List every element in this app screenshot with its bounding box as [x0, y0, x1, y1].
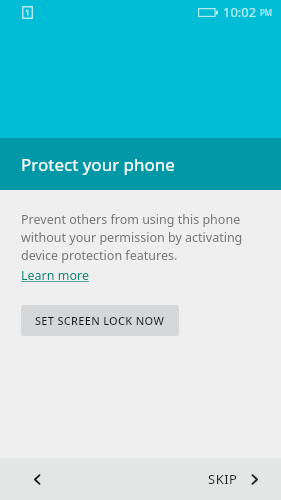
staticText: Prevent others from using this phone wit… — [21, 211, 265, 264]
staticText: 10:02 — [223, 3, 257, 21]
staticText: SET SCREEN LOCK NOW — [35, 313, 165, 328]
button[interactable]: SKIP — [202, 464, 267, 494]
button[interactable]: Learn more — [21, 267, 89, 284]
staticText: PM — [260, 7, 273, 18]
staticText: Protect your phone — [21, 153, 175, 176]
button[interactable]: Back — [20, 462, 54, 496]
button[interactable]: SET SCREEN LOCK NOW — [21, 305, 179, 336]
staticText: SKIP — [208, 470, 238, 488]
staticText: Learn more — [21, 267, 89, 284]
